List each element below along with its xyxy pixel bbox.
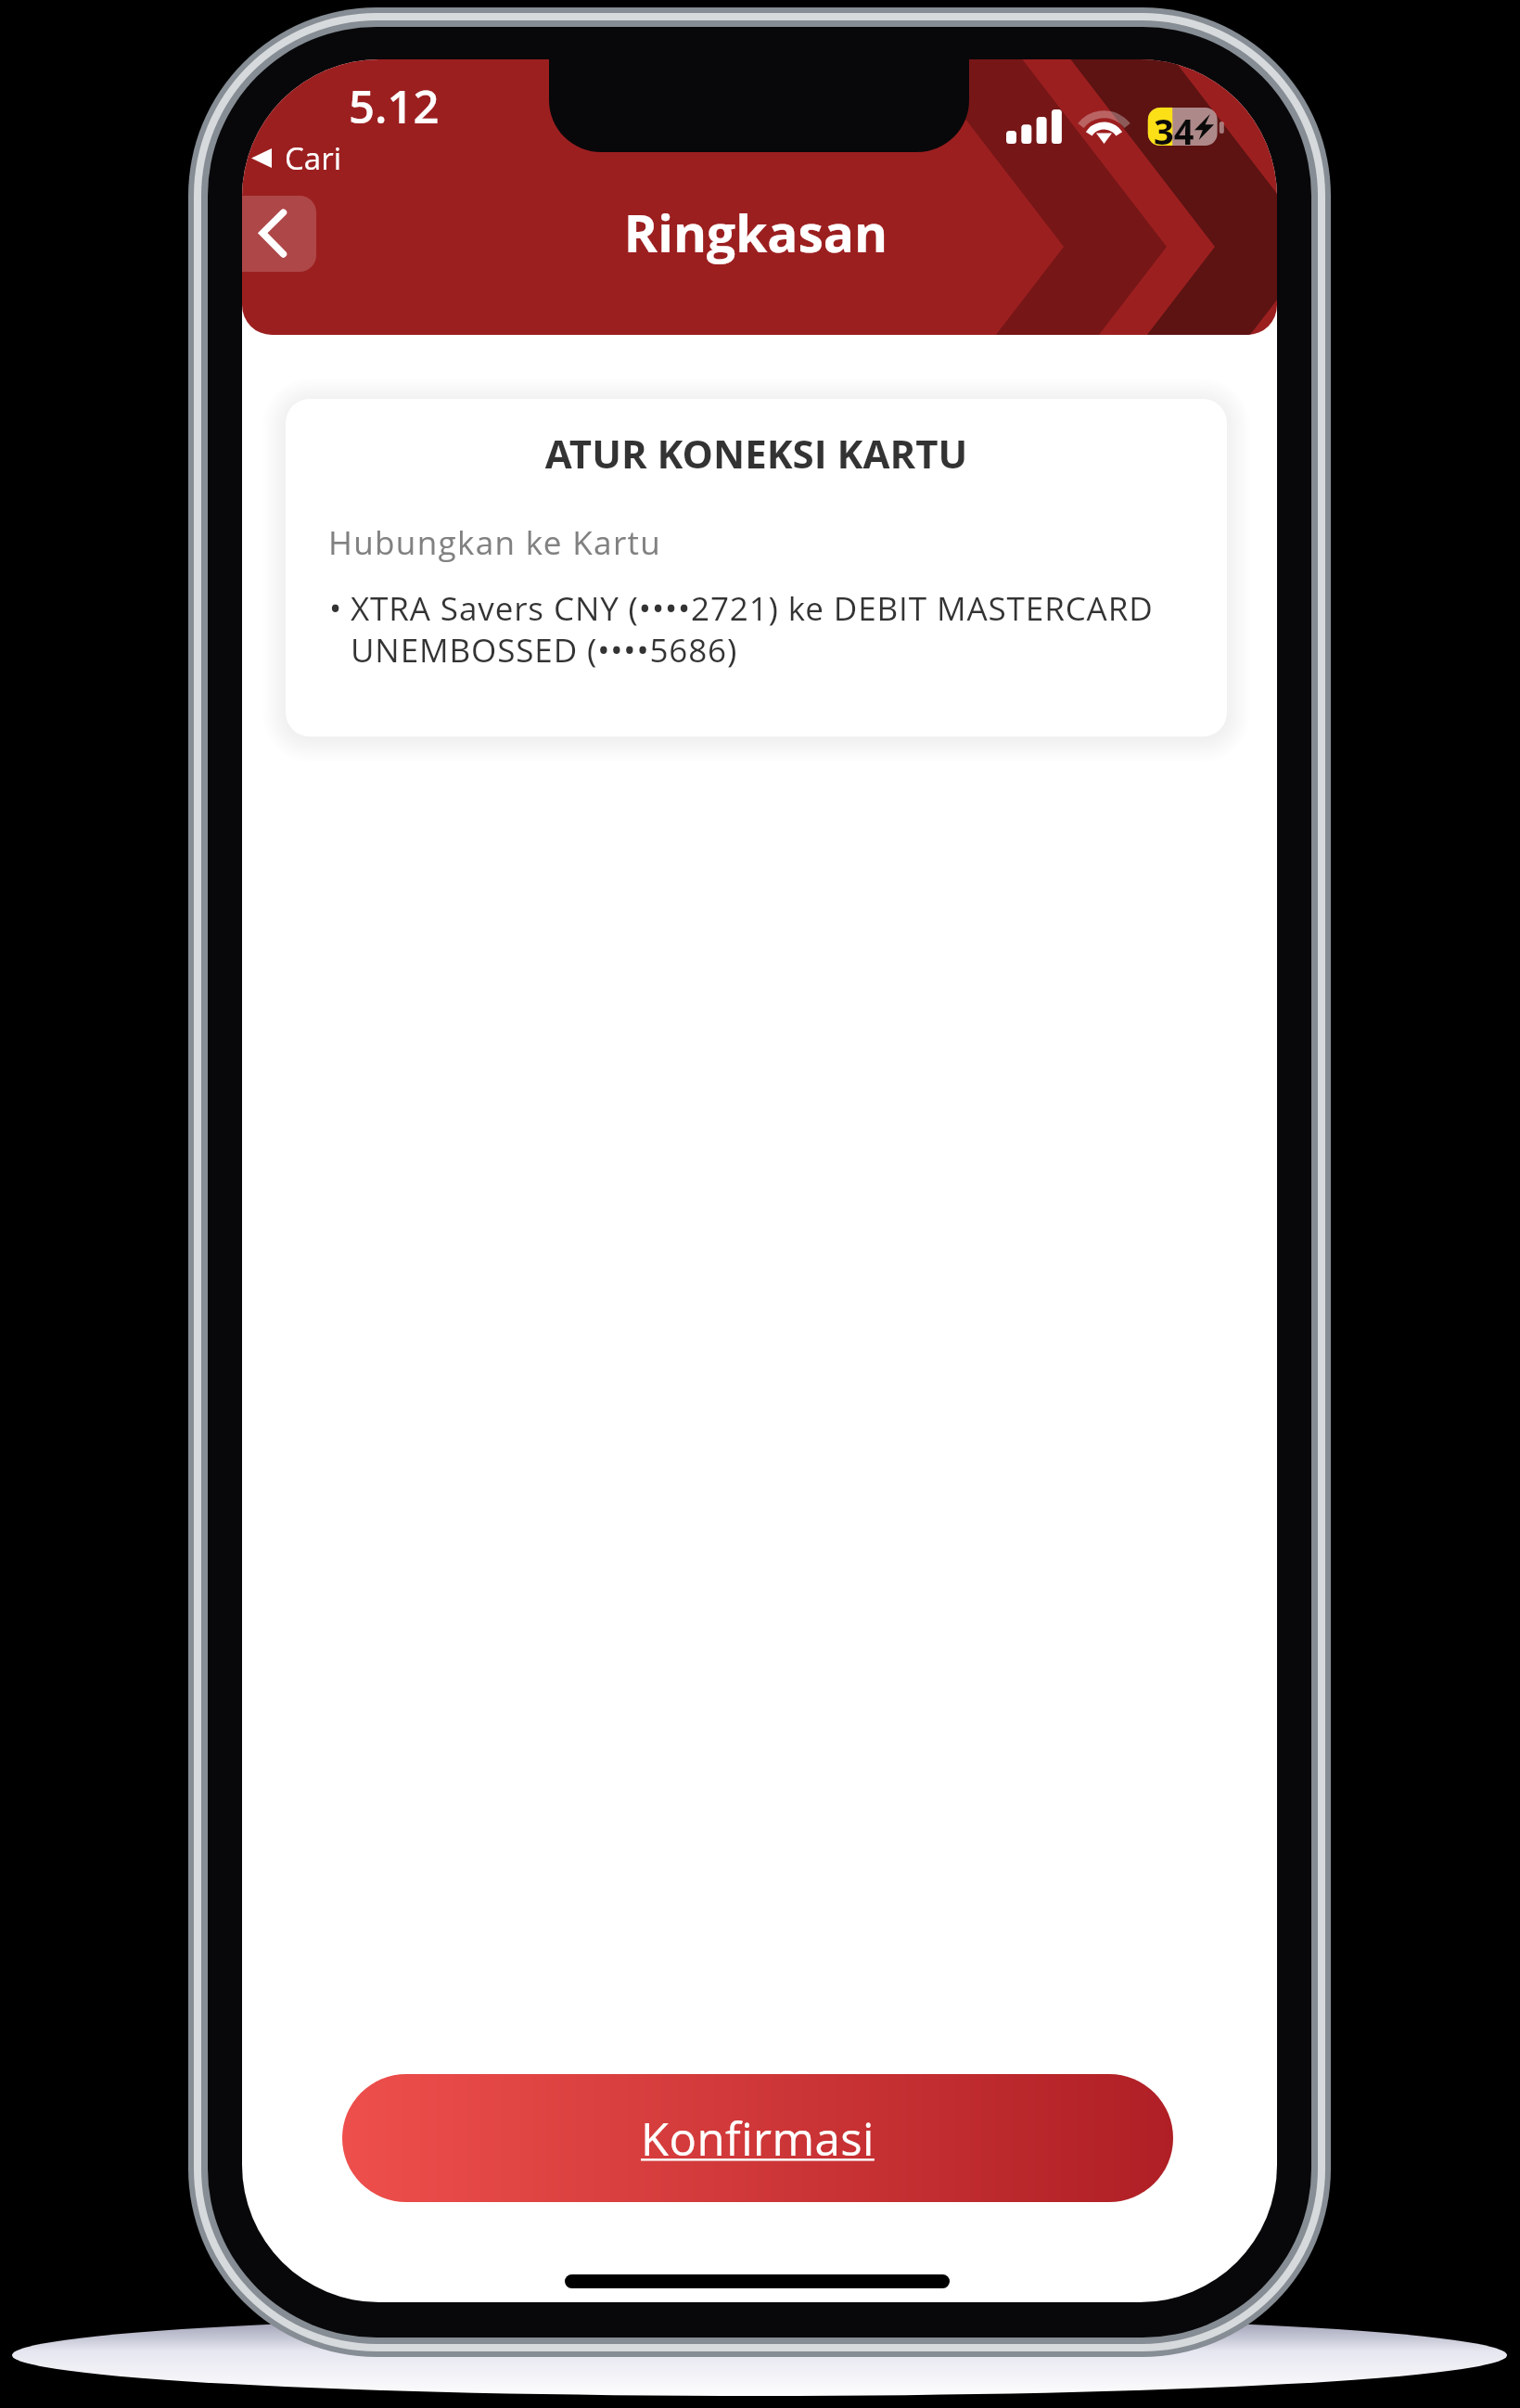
staticText: ATUR KONEKSI KARTU [286, 427, 1227, 480]
staticText: • [329, 586, 342, 631]
staticText: Ringkasan [242, 198, 1273, 267]
staticText: 34 [1154, 107, 1194, 155]
button[interactable]: Konfirmasi [342, 2074, 1173, 2202]
staticText: Cari [285, 137, 341, 179]
staticText: Hubungkan ke Kartu [328, 520, 662, 565]
staticText: Konfirmasi [641, 2107, 875, 2170]
button[interactable]: Back [242, 196, 316, 272]
staticText: XTRA Savers CNY (••••2721) ke DEBIT MAST… [351, 586, 1188, 672]
staticText: 5.12 [349, 75, 440, 137]
button[interactable]: ATUR KONEKSI KARTU [286, 399, 1227, 736]
